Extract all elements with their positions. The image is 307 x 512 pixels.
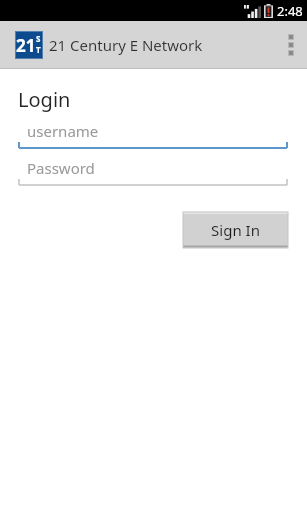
staticText: username	[27, 121, 99, 141]
button[interactable]: username	[18, 121, 288, 150]
button[interactable]: Sign In	[183, 212, 288, 248]
staticText: 2:48	[277, 2, 303, 20]
staticText: Sign In	[211, 220, 260, 240]
staticText: Login	[18, 86, 71, 113]
staticText: Password	[27, 158, 95, 178]
button[interactable]: More options	[275, 21, 307, 68]
staticText: 21 Century E Network	[49, 35, 203, 55]
staticText: 21	[16, 34, 36, 57]
button[interactable]: Password	[18, 158, 288, 187]
staticText: ST	[36, 33, 42, 55]
